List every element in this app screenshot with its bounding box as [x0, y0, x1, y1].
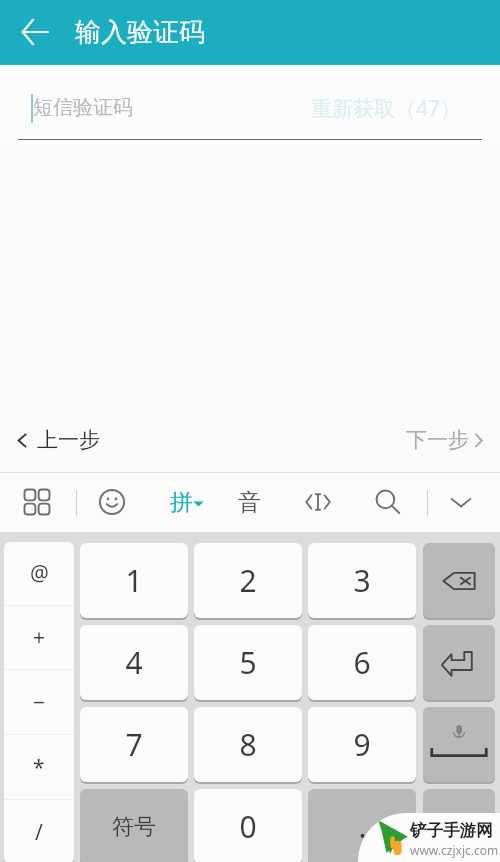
- button[interactable]: enter: [423, 625, 495, 700]
- button[interactable]: 5: [194, 625, 302, 700]
- staticText: +: [33, 623, 46, 652]
- button[interactable]: 音: [227, 473, 271, 532]
- button[interactable]: *: [4, 735, 74, 799]
- button[interactable]: backspace: [423, 543, 495, 618]
- staticText: www.czjxjc.com: [410, 842, 499, 858]
- staticText: 符号: [112, 813, 156, 841]
- staticText: 0: [239, 806, 257, 847]
- button[interactable]: cursor: [296, 480, 340, 524]
- staticText: 4: [125, 642, 143, 683]
- staticText: /: [35, 818, 43, 847]
- button[interactable]: smile: [90, 480, 134, 524]
- button[interactable]: 下一步: [406, 427, 484, 453]
- staticText: 5: [239, 642, 257, 683]
- button[interactable]: 6: [308, 625, 416, 700]
- staticText: 7: [125, 724, 143, 765]
- button[interactable]: 上一步: [15, 427, 100, 453]
- button[interactable]: 4: [80, 625, 188, 700]
- button[interactable]: down: [439, 480, 483, 524]
- button[interactable]: grid: [15, 480, 59, 524]
- staticText: 音: [238, 488, 261, 517]
- button[interactable]: Back: [11, 8, 59, 56]
- button[interactable]: @: [4, 542, 74, 605]
- button[interactable]: 拼: [163, 473, 211, 532]
- button[interactable]: 符号: [80, 789, 188, 862]
- staticText: 拼: [170, 488, 193, 517]
- button[interactable]: more: [423, 789, 495, 862]
- button[interactable]: space: [423, 707, 495, 782]
- button[interactable]: −: [4, 670, 74, 734]
- staticText: 短信验证码: [33, 95, 133, 120]
- button[interactable]: 8: [194, 707, 302, 782]
- button[interactable]: 7: [80, 707, 188, 782]
- staticText: 铲子手游网: [410, 820, 493, 841]
- button[interactable]: 9: [308, 707, 416, 782]
- staticText: 输入验证码: [75, 16, 205, 49]
- button[interactable]: +: [4, 606, 74, 669]
- staticText: 2: [239, 560, 257, 601]
- staticText: −: [33, 688, 46, 717]
- staticText: 9: [353, 724, 371, 765]
- staticText: 8: [239, 724, 257, 765]
- button[interactable]: .: [308, 789, 416, 862]
- staticText: 3: [353, 560, 371, 601]
- staticText: @: [30, 559, 49, 588]
- button[interactable]: 3: [308, 543, 416, 618]
- button[interactable]: /: [4, 800, 74, 862]
- button[interactable]: 1: [80, 543, 188, 618]
- button[interactable]: 2: [194, 543, 302, 618]
- staticText: 上一步: [37, 427, 100, 453]
- button[interactable]: search: [366, 480, 410, 524]
- staticText: 下一步: [406, 427, 469, 453]
- button[interactable]: 重新获取（47）: [311, 94, 462, 123]
- staticText: 6: [353, 642, 371, 683]
- staticText: .: [358, 806, 367, 847]
- staticText: 1: [125, 560, 143, 601]
- staticText: *: [33, 753, 45, 782]
- button[interactable]: 0: [194, 789, 302, 862]
